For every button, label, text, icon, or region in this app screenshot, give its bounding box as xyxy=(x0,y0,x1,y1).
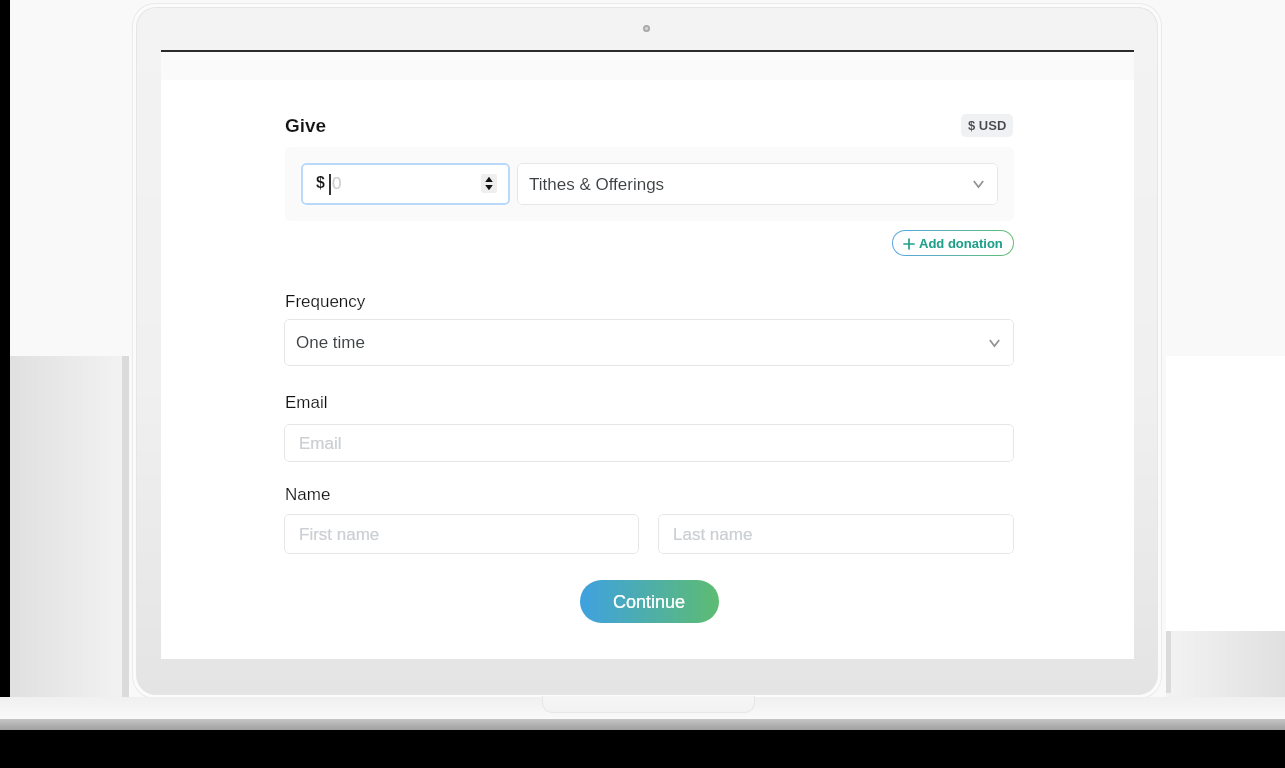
button[interactable]: Email xyxy=(284,424,1014,462)
button[interactable]: Add donation xyxy=(893,231,1013,255)
staticText: First name xyxy=(299,525,380,544)
staticText: Add donation xyxy=(919,236,1003,251)
button[interactable]: First name xyxy=(284,514,639,554)
staticText: Continue xyxy=(613,592,686,612)
button[interactable]: $ xyxy=(301,163,510,205)
staticText: Name xyxy=(285,485,331,504)
button[interactable]: Tithes & Offerings xyxy=(517,163,998,205)
button[interactable]: Last name xyxy=(658,514,1014,554)
button[interactable]: $ USD xyxy=(961,114,1013,137)
staticText: 0 xyxy=(332,174,342,193)
staticText: One time xyxy=(296,333,365,352)
staticText: Tithes & Offerings xyxy=(529,175,665,194)
staticText: Give xyxy=(285,115,327,136)
staticText: Frequency xyxy=(285,292,366,311)
staticText: $ USD xyxy=(968,118,1007,133)
button[interactable]: One time xyxy=(284,319,1014,366)
staticText: $ xyxy=(316,174,325,192)
staticText: Email xyxy=(299,434,342,453)
staticText: Last name xyxy=(673,525,753,544)
button[interactable]: Increase or decrease amount xyxy=(481,174,497,193)
staticText: Email xyxy=(285,393,328,412)
button[interactable]: Continue xyxy=(580,580,719,623)
